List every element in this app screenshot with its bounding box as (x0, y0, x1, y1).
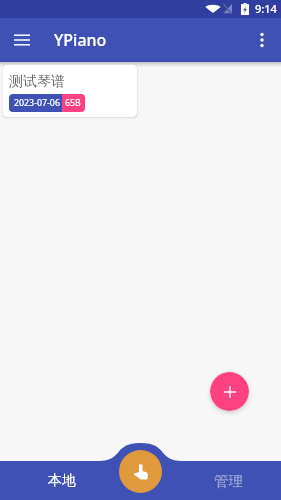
button[interactable]: More options (246, 24, 278, 56)
button[interactable]: 本地 (0, 461, 115, 500)
staticText: 本地 (48, 472, 76, 490)
button[interactable]: Add (210, 372, 249, 411)
button[interactable]: 管理 (166, 461, 281, 500)
staticText: 9:14 (255, 1, 277, 16)
button[interactable]: 测试琴谱 (3, 65, 137, 117)
button[interactable]: Open navigation menu (6, 24, 38, 56)
staticText: 测试琴谱 (9, 73, 65, 91)
staticText: YPiano (54, 29, 107, 51)
staticText: 2023-07-06 (14, 97, 60, 109)
button[interactable]: Play (119, 450, 162, 493)
staticText: 65B (65, 97, 81, 109)
staticText: 管理 (214, 472, 243, 490)
